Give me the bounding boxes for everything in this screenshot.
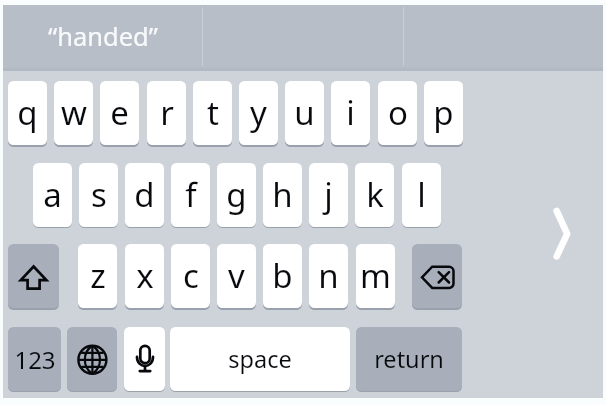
staticText: space (228, 343, 292, 375)
button[interactable]: Dictate (124, 327, 165, 391)
staticText: y (250, 90, 267, 135)
button[interactable]: j (309, 163, 348, 227)
button[interactable]: u (285, 81, 324, 145)
staticText: 123 (14, 343, 56, 376)
button[interactable]: c (171, 244, 210, 308)
button[interactable]: space (170, 327, 350, 391)
staticText: b (272, 253, 293, 298)
button[interactable]: “handed” (3, 5, 202, 68)
button[interactable]: q (8, 81, 47, 145)
staticText: t (207, 90, 219, 135)
button[interactable]: b (263, 244, 302, 308)
button[interactable]: g (217, 163, 256, 227)
button[interactable]: d (125, 163, 164, 227)
staticText: m (360, 253, 391, 298)
button[interactable]: f (171, 163, 210, 227)
staticText: h (272, 172, 293, 217)
staticText: return (374, 343, 444, 375)
staticText: w (61, 90, 87, 135)
button[interactable]: a (33, 163, 72, 227)
button[interactable]: l (402, 163, 441, 227)
staticText: p (433, 90, 454, 135)
button[interactable]: n (309, 244, 348, 308)
button[interactable]: y (239, 81, 278, 145)
staticText: u (294, 90, 315, 135)
button[interactable]: h (263, 163, 302, 227)
staticText: o (388, 90, 408, 135)
button[interactable]: x (125, 244, 164, 308)
button[interactable]: o (378, 81, 417, 145)
button[interactable]: z (78, 244, 117, 308)
button[interactable]: t (193, 81, 232, 145)
button[interactable]: Expand keyboard (517, 188, 606, 278)
button[interactable]: Switch keyboard (67, 327, 117, 391)
button[interactable]: m (356, 244, 395, 308)
staticText: s (91, 172, 107, 217)
staticText: j (324, 172, 333, 217)
staticText: x (136, 253, 154, 298)
button[interactable]: 123 (8, 327, 61, 391)
staticText: i (346, 90, 355, 135)
staticText: v (228, 253, 245, 298)
button[interactable]: w (54, 81, 93, 145)
staticText: l (417, 172, 426, 217)
staticText: d (134, 172, 155, 217)
staticText: z (90, 253, 106, 298)
staticText: g (226, 172, 247, 217)
staticText: k (366, 172, 384, 217)
staticText: a (43, 172, 62, 217)
button[interactable]: p (424, 81, 463, 145)
staticText: r (160, 90, 174, 135)
staticText: f (185, 172, 197, 217)
staticText: e (110, 90, 129, 135)
button[interactable]: e (100, 81, 139, 145)
button[interactable]: Shift (8, 244, 59, 308)
button[interactable]: r (147, 81, 186, 145)
staticText: c (183, 253, 199, 298)
button[interactable]: return (356, 327, 462, 391)
staticText: “handed” (48, 19, 158, 54)
staticText: q (17, 90, 38, 135)
staticText: n (318, 253, 339, 298)
button[interactable]: k (355, 163, 394, 227)
button[interactable]: s (79, 163, 118, 227)
button[interactable]: i (331, 81, 370, 145)
button[interactable]: v (217, 244, 256, 308)
button[interactable]: Backspace (412, 244, 462, 308)
